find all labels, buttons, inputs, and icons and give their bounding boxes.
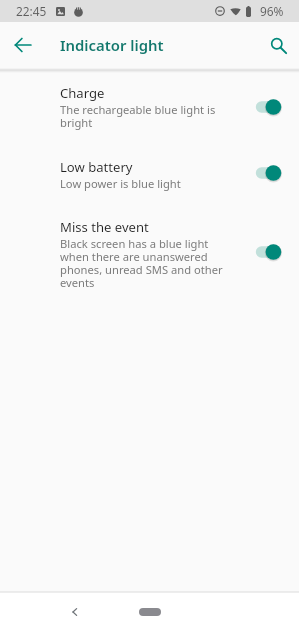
staticText: Low battery xyxy=(60,158,133,176)
button[interactable]: Toggle xyxy=(245,92,285,122)
button[interactable]: Miss the event xyxy=(0,218,299,291)
staticText: Charge xyxy=(60,84,105,102)
button[interactable]: Back xyxy=(8,30,38,60)
staticText: The rechargeable blue light is bright xyxy=(60,102,244,131)
staticText: Black screen has a blue light when there… xyxy=(60,236,236,291)
staticText: 22:45 xyxy=(16,3,47,19)
button[interactable]: Search xyxy=(263,30,293,60)
staticText: 96% xyxy=(260,3,284,19)
staticText: Low power is blue light xyxy=(60,176,181,191)
button[interactable]: Toggle xyxy=(245,237,285,267)
button[interactable]: Charge xyxy=(0,84,299,131)
button[interactable]: Back xyxy=(60,597,90,627)
staticText: Miss the event xyxy=(60,218,149,236)
button[interactable]: Toggle xyxy=(245,158,285,188)
button[interactable]: Low battery xyxy=(0,158,299,191)
staticText: Indicator light xyxy=(60,35,164,55)
button[interactable]: Home xyxy=(139,608,161,616)
